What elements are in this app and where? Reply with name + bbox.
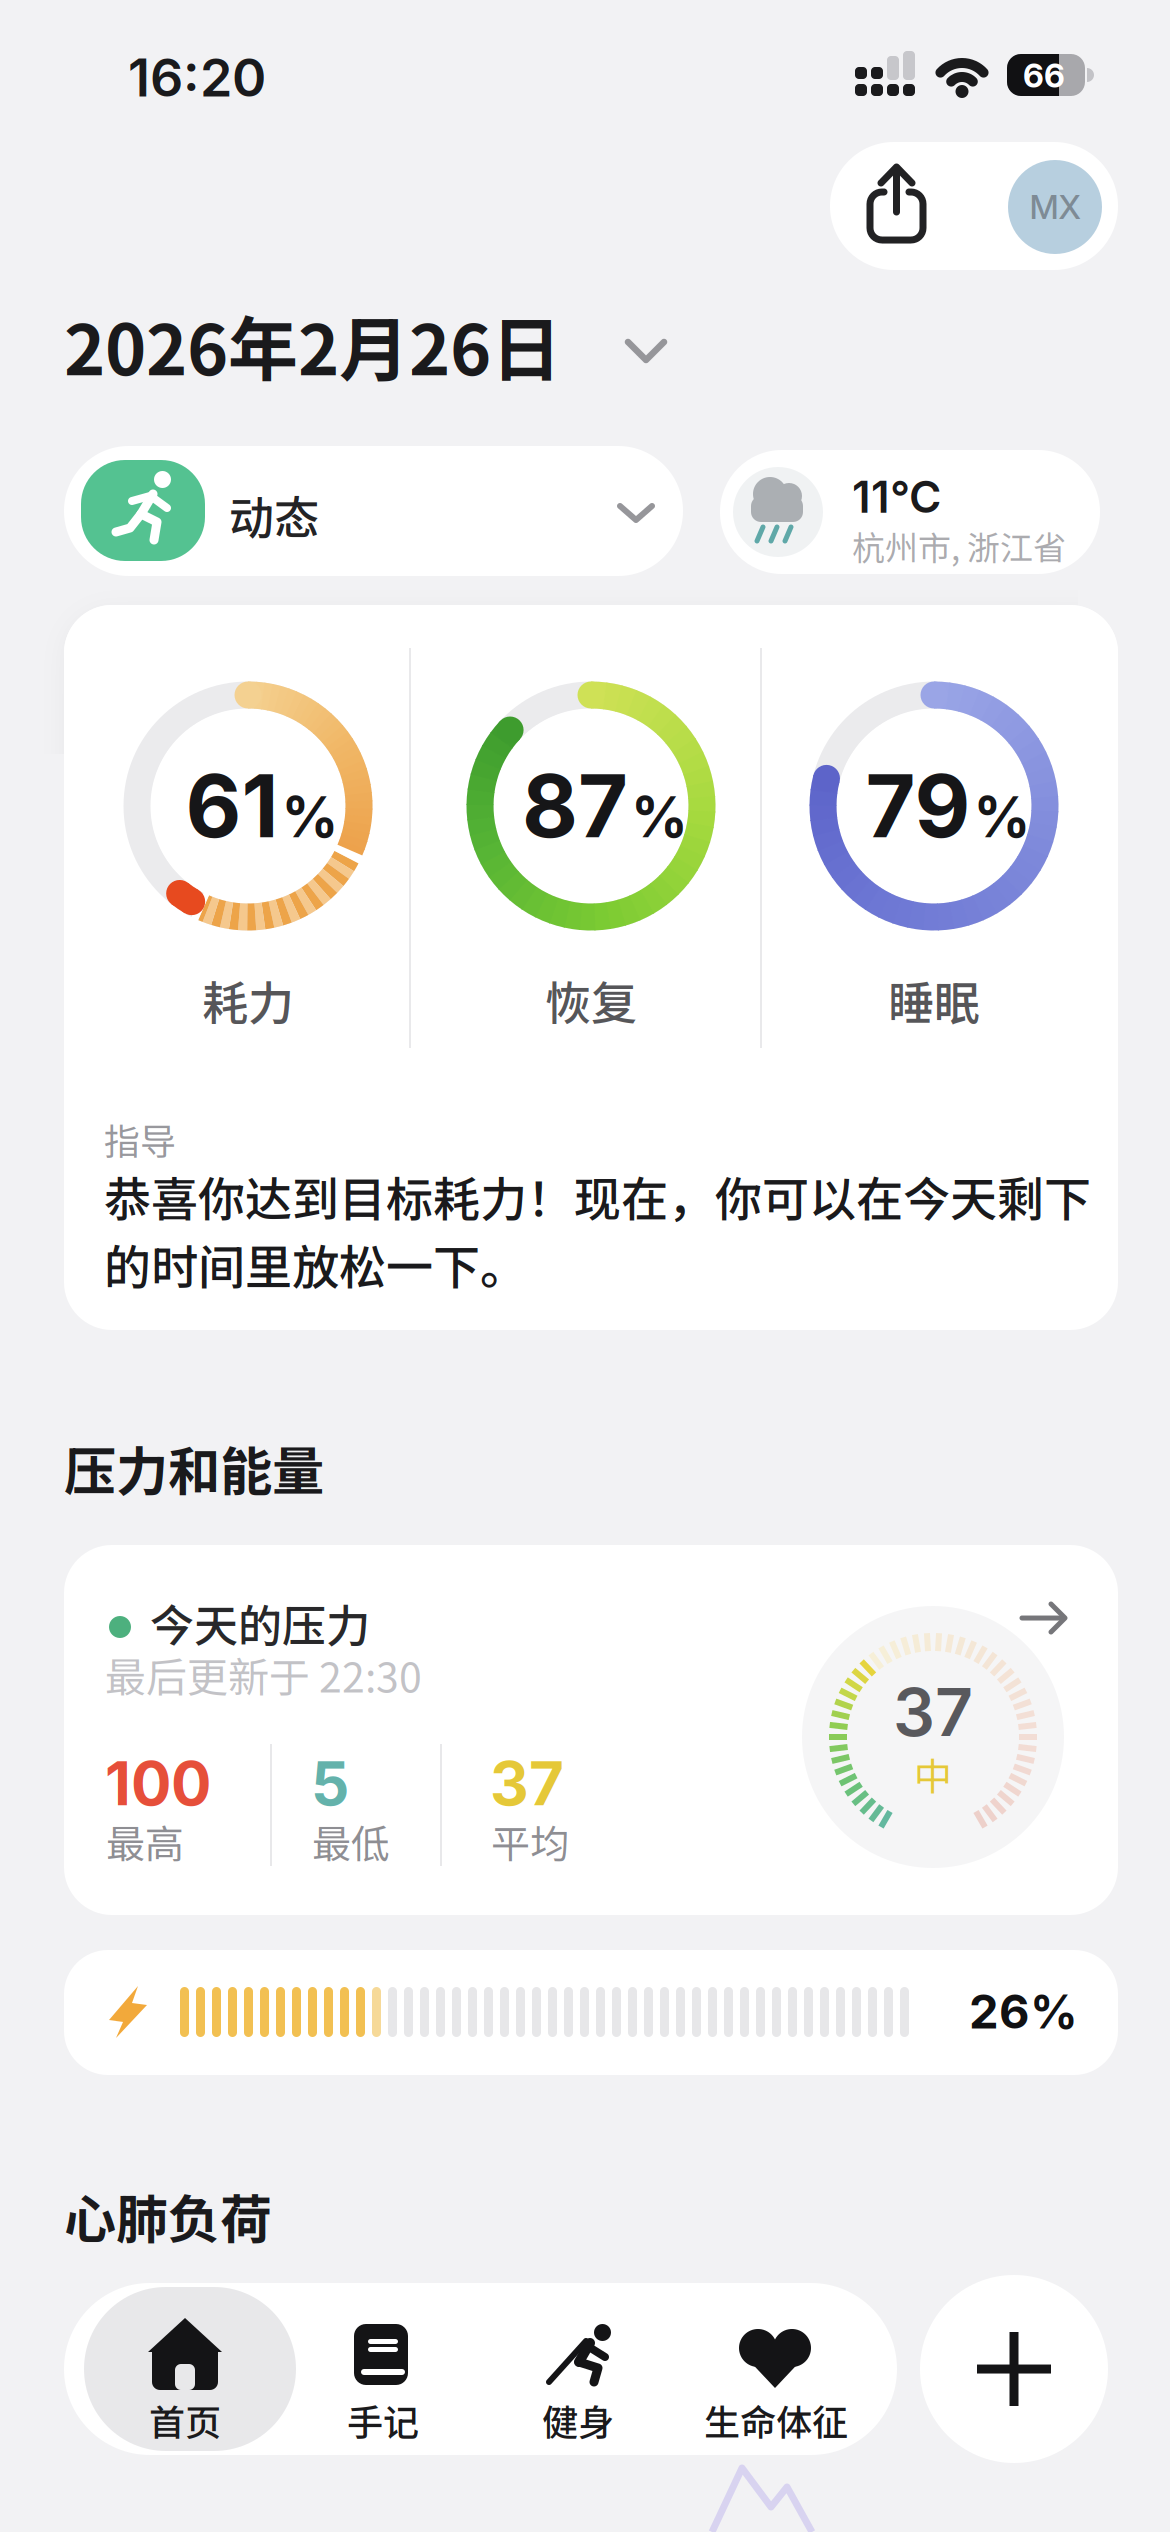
staticText: 平均	[491, 1813, 569, 1869]
staticText: 睡眠	[888, 967, 980, 1033]
staticText: MX	[1029, 187, 1080, 227]
staticText: 79	[865, 754, 970, 858]
staticText: 2026年2月26日	[64, 294, 561, 395]
button[interactable]: 首页	[84, 2287, 296, 2451]
staticText: 压力和能量	[64, 1430, 324, 1505]
staticText: 手记	[347, 2394, 419, 2446]
staticText: 最后更新于 22:30	[105, 1645, 422, 1704]
staticText: 今天的压力	[150, 1591, 370, 1655]
staticText: 的时间里放松一下。	[104, 1230, 527, 1298]
button[interactable]: 26%	[64, 1950, 1118, 2075]
staticText: 耗力	[202, 967, 294, 1033]
staticText: 61	[185, 754, 278, 858]
button[interactable]: 生命体征	[681, 2287, 871, 2451]
staticText: 健身	[542, 2394, 614, 2446]
button[interactable]: 动态	[64, 446, 683, 576]
staticText: %	[973, 783, 1030, 851]
staticText: 87	[522, 754, 628, 858]
staticText: 16:20	[128, 46, 266, 109]
staticText: 心肺负荷	[64, 2178, 272, 2253]
button[interactable]: Share	[858, 160, 934, 252]
staticText: 首页	[149, 2394, 221, 2446]
staticText: 11°C	[852, 470, 941, 523]
staticText: 100	[105, 1747, 211, 1820]
staticText: 最高	[106, 1813, 184, 1869]
staticText: 指导	[104, 1113, 176, 1165]
button[interactable]: 11°C	[720, 450, 1100, 574]
staticText: 26%	[969, 1983, 1078, 2040]
staticText: 恢复	[545, 967, 637, 1033]
staticText: 动态	[229, 482, 319, 547]
button[interactable]: Add	[920, 2275, 1108, 2463]
button[interactable]: 2026年2月26日	[64, 294, 561, 395]
staticText: 37	[893, 1672, 973, 1752]
staticText: 生命体征	[704, 2394, 848, 2446]
staticText: %	[631, 783, 688, 851]
staticText: 66	[1023, 55, 1065, 95]
button[interactable]: Profile MX	[1008, 160, 1102, 254]
staticText: 37	[490, 1747, 564, 1820]
staticText: 5	[311, 1747, 349, 1820]
staticText: 最低	[312, 1813, 390, 1869]
staticText: %	[281, 783, 338, 851]
button[interactable]: 健身	[483, 2287, 673, 2451]
button[interactable]	[830, 142, 1118, 270]
staticText: 中	[914, 1746, 952, 1801]
staticText: 杭州市, 浙江省	[852, 522, 1066, 570]
button[interactable]: 手记	[288, 2287, 478, 2451]
staticText: 恭喜你达到目标耗力！现在，你可以在今天剩下	[104, 1162, 1091, 1230]
button[interactable]: 今天的压力	[64, 1545, 1118, 1915]
